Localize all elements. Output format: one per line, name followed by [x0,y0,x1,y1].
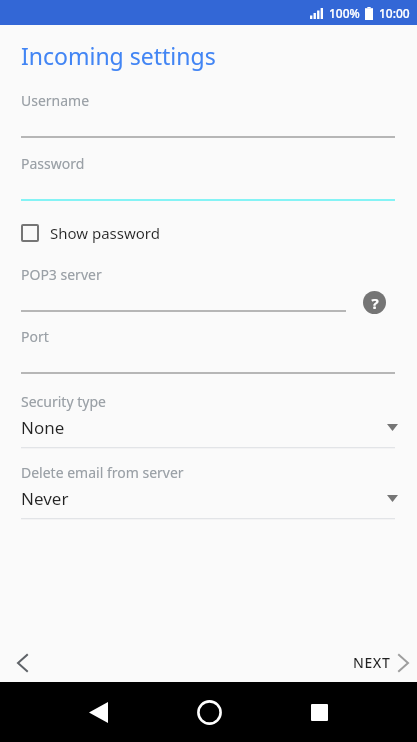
button[interactable]: Recent apps [299,692,339,732]
button[interactable]: Show password [21,223,417,243]
staticText: ? [371,293,379,313]
staticText: Show password [50,223,160,243]
button[interactable]: Delete email from server [0,463,417,520]
staticText: 100% [329,5,360,21]
button[interactable]: Help [363,291,386,314]
button[interactable]: Password [0,154,417,202]
staticText: 10:00 [379,5,410,21]
staticText: Password [21,154,85,173]
button[interactable]: NEXT [353,653,408,672]
staticText: NEXT [353,653,391,672]
button[interactable]: Port [0,327,417,375]
staticText: Never [21,487,69,510]
staticText: Security type [21,392,106,411]
button[interactable]: Username [0,91,417,139]
staticText: Delete email from server [21,463,184,482]
button[interactable]: Home [189,692,229,732]
staticText: Incoming settings [21,40,216,71]
button[interactable]: Back [6,647,38,679]
staticText: Username [21,91,90,110]
staticText: Port [21,327,49,346]
staticText: POP3 server [21,265,102,284]
button[interactable]: Security type [0,392,417,449]
staticText: None [21,416,65,439]
button[interactable]: Back [78,692,118,732]
button[interactable]: POP3 server [0,265,417,313]
